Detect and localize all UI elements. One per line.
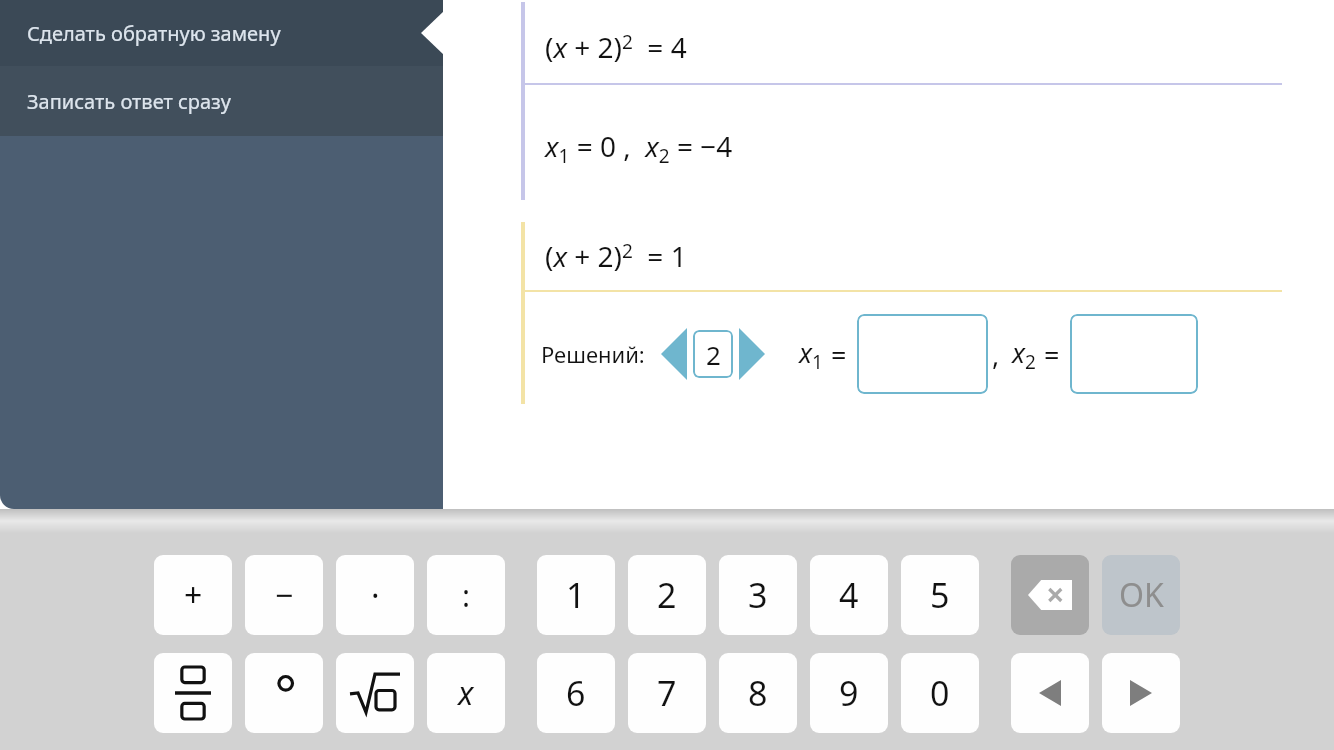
staticText: 7: [657, 670, 677, 716]
staticText: +: [184, 573, 203, 617]
staticText: 2: [706, 337, 721, 372]
button[interactable]: Backspace: [1011, 555, 1089, 635]
staticText: ·: [371, 573, 380, 617]
staticText: 2: [657, 572, 677, 618]
button[interactable]: OK: [1102, 555, 1180, 635]
staticText: x1: [799, 334, 823, 375]
staticText: (x + 2)2 = 4: [545, 28, 687, 66]
button[interactable]: 0: [901, 653, 979, 733]
staticText: =: [1044, 336, 1060, 373]
staticText: Решений:: [541, 339, 645, 369]
button[interactable]: Move left: [1011, 653, 1089, 733]
button[interactable]: 2: [693, 330, 733, 378]
button[interactable]: ·: [336, 555, 414, 635]
button[interactable]: :: [427, 555, 505, 635]
button[interactable]: Записать ответ сразу: [0, 66, 443, 136]
button[interactable]: Answer x1: [857, 314, 988, 394]
staticText: =: [831, 336, 847, 373]
button[interactable]: Square root: [336, 653, 414, 733]
staticText: :: [462, 575, 471, 616]
button[interactable]: 3: [719, 555, 797, 635]
button[interactable]: +: [154, 555, 232, 635]
button[interactable]: 5: [901, 555, 979, 635]
button[interactable]: Previous: [661, 328, 687, 380]
staticText: 9: [839, 670, 859, 716]
staticText: ,: [992, 336, 1000, 373]
button[interactable]: Move right: [1102, 653, 1180, 733]
staticText: Сделать обратную замену: [27, 20, 281, 47]
button[interactable]: Degree: [245, 653, 323, 733]
button[interactable]: 4: [810, 555, 888, 635]
staticText: −: [275, 573, 294, 617]
staticText: x: [458, 671, 474, 715]
staticText: 0: [930, 670, 950, 716]
staticText: 3: [748, 572, 768, 618]
button[interactable]: 2: [628, 555, 706, 635]
button[interactable]: x: [427, 653, 505, 733]
button[interactable]: Answer x2: [1070, 314, 1198, 394]
button[interactable]: 8: [719, 653, 797, 733]
button[interactable]: Next: [739, 328, 765, 380]
staticText: 5: [930, 572, 950, 618]
button[interactable]: Сделать обратную замену: [0, 0, 443, 66]
staticText: Записать ответ сразу: [27, 88, 231, 115]
staticText: 1: [566, 572, 586, 618]
staticText: (x + 2)2 = 1: [545, 237, 687, 275]
button[interactable]: Fraction: [154, 653, 232, 733]
staticText: x1 = 0 , x2 = −4: [545, 127, 733, 169]
button[interactable]: 7: [628, 653, 706, 733]
button[interactable]: 9: [810, 653, 888, 733]
button[interactable]: 1: [537, 555, 615, 635]
button[interactable]: −: [245, 555, 323, 635]
staticText: OK: [1119, 573, 1164, 617]
staticText: 4: [839, 572, 859, 618]
button[interactable]: 6: [537, 653, 615, 733]
staticText: 8: [748, 670, 768, 716]
staticText: x2: [1012, 334, 1036, 375]
staticText: 6: [566, 670, 586, 716]
